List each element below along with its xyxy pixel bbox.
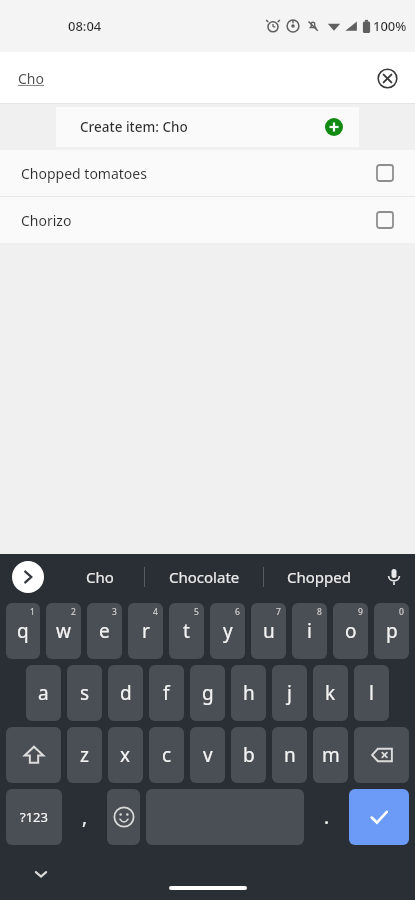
- staticText: 5: [194, 606, 199, 618]
- button[interactable]: r: [128, 603, 163, 659]
- button[interactable]: Voice input: [373, 554, 415, 600]
- button[interactable]: Create item: Cho: [56, 107, 359, 147]
- staticText: o: [345, 618, 357, 644]
- staticText: v: [203, 742, 213, 768]
- staticText: m: [322, 742, 340, 768]
- button[interactable]: Chopped: [264, 554, 373, 600]
- staticText: t: [183, 618, 190, 644]
- staticText: Chopped tomatoes: [21, 164, 147, 183]
- staticText: 2: [71, 606, 76, 618]
- staticText: Cho: [86, 567, 114, 587]
- staticText: 8: [317, 606, 322, 618]
- button[interactable]: y: [210, 603, 245, 659]
- staticText: 3: [112, 606, 117, 618]
- staticText: w: [56, 618, 71, 644]
- button[interactable]: m: [313, 727, 348, 783]
- button[interactable]: Emoji: [107, 789, 140, 845]
- button[interactable]: e: [87, 603, 122, 659]
- staticText: Chopped: [287, 567, 351, 587]
- staticText: j: [287, 680, 292, 706]
- staticText: 100%: [373, 17, 407, 35]
- button[interactable]: Hide keyboard: [24, 857, 58, 891]
- staticText: y: [223, 618, 233, 644]
- button[interactable]: Chocolate: [145, 554, 263, 600]
- staticText: f: [163, 680, 170, 706]
- button[interactable]: s: [67, 665, 102, 721]
- button[interactable]: p: [374, 603, 409, 659]
- button[interactable]: b: [231, 727, 266, 783]
- button[interactable]: w: [46, 603, 81, 659]
- staticText: n: [284, 742, 296, 768]
- button[interactable]: x: [108, 727, 143, 783]
- button[interactable]: f: [149, 665, 184, 721]
- button[interactable]: Chopped tomatoes: [0, 150, 415, 196]
- button[interactable]: u: [251, 603, 286, 659]
- button[interactable]: t: [169, 603, 204, 659]
- staticText: a: [38, 680, 49, 706]
- button[interactable]: z: [67, 727, 102, 783]
- staticText: 08:04: [68, 17, 102, 35]
- button[interactable]: Toggle Chopped tomatoes: [370, 158, 400, 188]
- staticText: 0: [399, 606, 404, 618]
- button[interactable]: ?123: [6, 789, 62, 845]
- button[interactable]: q: [6, 603, 40, 659]
- staticText: i: [307, 618, 312, 644]
- staticText: 6: [235, 606, 240, 618]
- button[interactable]: o: [333, 603, 368, 659]
- button[interactable]: i: [292, 603, 327, 659]
- button[interactable]: n: [272, 727, 307, 783]
- staticText: l: [369, 680, 374, 706]
- staticText: p: [386, 618, 398, 644]
- button[interactable]: .: [310, 789, 343, 845]
- staticText: r: [142, 618, 150, 644]
- staticText: 9: [358, 606, 363, 618]
- button[interactable]: ,: [68, 789, 101, 845]
- staticText: Cho: [18, 69, 44, 88]
- button[interactable]: Chorizo: [0, 197, 415, 243]
- button[interactable]: l: [354, 665, 389, 721]
- button[interactable]: Cho: [56, 554, 144, 600]
- staticText: ?123: [20, 808, 48, 826]
- staticText: x: [120, 742, 131, 768]
- staticText: Create item: Cho: [80, 118, 188, 136]
- button[interactable]: More suggestions: [0, 554, 56, 600]
- staticText: s: [80, 680, 90, 706]
- staticText: d: [120, 680, 132, 706]
- button[interactable]: d: [108, 665, 143, 721]
- button[interactable]: Toggle Chorizo: [370, 205, 400, 235]
- button[interactable]: v: [190, 727, 225, 783]
- staticText: ,: [82, 804, 88, 830]
- button[interactable]: h: [231, 665, 266, 721]
- button[interactable]: k: [313, 665, 348, 721]
- staticText: g: [202, 680, 214, 706]
- staticText: Chorizo: [21, 211, 72, 230]
- staticText: h: [243, 680, 255, 706]
- button[interactable]: Backspace: [354, 727, 409, 783]
- staticText: c: [162, 742, 172, 768]
- staticText: 7: [276, 606, 281, 618]
- staticText: q: [17, 618, 29, 644]
- staticText: 4: [153, 606, 158, 618]
- button[interactable]: Enter: [349, 789, 409, 845]
- staticText: u: [263, 618, 275, 644]
- staticText: e: [99, 618, 110, 644]
- staticText: Chocolate: [169, 567, 240, 587]
- staticText: z: [80, 742, 89, 768]
- staticText: 1: [30, 606, 35, 618]
- button[interactable]: Shift: [6, 727, 61, 783]
- staticText: k: [325, 680, 336, 706]
- button[interactable]: g: [190, 665, 225, 721]
- button[interactable]: j: [272, 665, 307, 721]
- button[interactable]: a: [26, 665, 61, 721]
- staticText: b: [243, 742, 255, 768]
- button[interactable]: c: [149, 727, 184, 783]
- button[interactable]: Clear text: [370, 61, 404, 95]
- staticText: .: [324, 804, 330, 830]
